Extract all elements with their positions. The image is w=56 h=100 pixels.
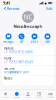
staticText: video [30, 40, 38, 43]
button[interactable]: mail [41, 33, 54, 43]
staticText: 9:41 [3, 0, 10, 6]
button[interactable]: FaceTime [2, 65, 54, 75]
staticText: Keypad [36, 96, 42, 98]
button[interactable]: Recents [3, 6, 20, 11]
staticText: call [19, 40, 23, 43]
button[interactable]: Voicemail [45, 92, 56, 98]
staticText: +1 (555) 987-6543 [4, 60, 33, 64]
staticText: Recents [6, 6, 19, 11]
staticText: message [3, 40, 14, 43]
staticText: Favorites [2, 96, 9, 98]
staticText: home [4, 57, 12, 60]
button[interactable]: Keypad [34, 92, 45, 98]
staticText: Neca Ancuaph [13, 24, 42, 29]
button[interactable]: video [28, 33, 41, 43]
button[interactable]: message [2, 33, 15, 43]
staticText: FaceTime [4, 67, 15, 70]
button[interactable]: call [15, 33, 28, 43]
staticText: neca@example.com [4, 70, 28, 74]
button[interactable]: mobile [2, 46, 54, 55]
button[interactable]: home [2, 55, 54, 65]
button[interactable]: Contacts [22, 92, 34, 98]
staticText: mail [45, 40, 50, 43]
button[interactable]: Edit [45, 6, 53, 11]
staticText: Edit [46, 6, 52, 11]
staticText: Notes [4, 77, 12, 80]
staticText: +1 (555) 012-3456 [4, 50, 33, 54]
button[interactable]: Recents [11, 92, 22, 98]
staticText: Voicemail [47, 96, 53, 98]
staticText: Recents [14, 96, 20, 98]
button[interactable]: Notes [2, 75, 54, 85]
staticText: mobile [4, 47, 14, 50]
staticText: NC [23, 13, 32, 21]
staticText: Contacts [25, 96, 31, 98]
button[interactable]: Favorites [0, 92, 11, 98]
